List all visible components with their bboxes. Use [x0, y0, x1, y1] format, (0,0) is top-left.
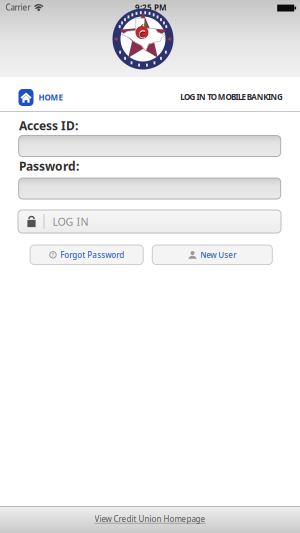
button[interactable]: HOME — [18, 89, 62, 106]
staticText: C — [139, 27, 146, 41]
staticText: LOG IN — [52, 214, 88, 229]
staticText: View Credit Union Homepage — [94, 514, 205, 524]
button[interactable]: ? — [30, 245, 143, 265]
button[interactable]: View Credit Union Homepage — [94, 514, 205, 524]
staticText: Password: — [19, 158, 79, 174]
staticText: ? — [51, 251, 54, 258]
staticText: Forgot Password — [60, 249, 124, 260]
staticText: Access ID: — [19, 117, 78, 133]
staticText: HOME — [38, 92, 62, 103]
button[interactable]: LOG IN — [18, 210, 281, 233]
staticText: Carrier — [5, 2, 30, 13]
staticText: LOG IN TO MOBILE BANKING — [180, 92, 283, 102]
staticText: C — [139, 28, 145, 40]
staticText: New User — [200, 249, 236, 260]
button[interactable]: New User — [152, 245, 272, 265]
staticText: 9:25 PM — [135, 2, 166, 13]
